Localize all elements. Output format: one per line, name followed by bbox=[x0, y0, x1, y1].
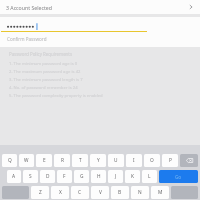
button[interactable]: Q bbox=[2, 154, 17, 167]
staticText: 2. The maximum password age is 42 bbox=[9, 69, 81, 75]
button[interactable]: P bbox=[162, 154, 178, 167]
button[interactable]: Backspace bbox=[180, 154, 198, 167]
staticText: P bbox=[169, 157, 172, 164]
button[interactable]: F bbox=[57, 170, 72, 183]
button[interactable]: B bbox=[111, 186, 129, 199]
staticText: 3 Account Selected bbox=[6, 4, 52, 11]
other: Expand accounts bbox=[188, 4, 194, 10]
button[interactable] bbox=[0, 22, 200, 31]
button[interactable]: M bbox=[151, 186, 169, 199]
button[interactable]: W bbox=[19, 154, 34, 167]
staticText: 1. The minimum password age is 0 bbox=[9, 61, 78, 67]
button[interactable]: R bbox=[54, 154, 70, 167]
button[interactable]: I bbox=[126, 154, 142, 167]
button[interactable]: C bbox=[71, 186, 89, 199]
staticText: Q bbox=[8, 157, 12, 164]
button[interactable]: G bbox=[74, 170, 89, 183]
button[interactable]: V bbox=[91, 186, 109, 199]
staticText: 5. The password complexity property is e… bbox=[9, 93, 103, 99]
staticText: F bbox=[63, 173, 66, 180]
staticText: J bbox=[115, 173, 117, 180]
button[interactable]: L bbox=[142, 170, 157, 183]
staticText: 4. No. of password remember is 24 bbox=[9, 85, 78, 91]
button[interactable]: Go bbox=[159, 170, 198, 183]
staticText: H bbox=[97, 173, 101, 180]
button[interactable]: N bbox=[131, 186, 149, 199]
button[interactable]: S bbox=[23, 170, 38, 183]
staticText: O bbox=[150, 157, 154, 164]
staticText: V bbox=[99, 189, 102, 196]
button[interactable]: J bbox=[108, 170, 123, 183]
staticText: Y bbox=[97, 157, 100, 164]
staticText: S bbox=[29, 173, 32, 180]
staticText: M bbox=[158, 189, 163, 196]
staticText: W bbox=[24, 157, 29, 164]
staticText: Confirm Password bbox=[7, 36, 47, 42]
button[interactable]: A bbox=[7, 170, 21, 183]
button[interactable]: K bbox=[125, 170, 140, 183]
staticText: A bbox=[12, 173, 16, 180]
button[interactable]: Z bbox=[31, 186, 49, 199]
staticText: D bbox=[46, 173, 50, 180]
staticText: Z bbox=[39, 189, 42, 196]
staticText: X bbox=[59, 189, 62, 196]
button[interactable]: X bbox=[51, 186, 69, 199]
button[interactable]: H bbox=[91, 170, 106, 183]
button[interactable]: E bbox=[36, 154, 52, 167]
staticText: E bbox=[43, 157, 46, 164]
staticText: G bbox=[80, 173, 84, 180]
staticText: K bbox=[131, 173, 134, 180]
staticText: C bbox=[78, 189, 82, 196]
button[interactable]: O bbox=[144, 154, 160, 167]
staticText: L bbox=[148, 173, 151, 180]
button[interactable]: D bbox=[40, 170, 55, 183]
staticText: I bbox=[133, 157, 135, 164]
button[interactable]: Y bbox=[90, 154, 106, 167]
staticText: R bbox=[61, 157, 64, 164]
button[interactable]: T bbox=[72, 154, 88, 167]
staticText: B bbox=[118, 189, 122, 196]
staticText: Password Policy Requirements bbox=[9, 51, 73, 57]
button[interactable]: U bbox=[108, 154, 124, 167]
button[interactable]: 3 Account Selected bbox=[0, 0, 200, 14]
staticText: T bbox=[79, 157, 82, 164]
staticText: U bbox=[114, 157, 118, 164]
staticText: N bbox=[138, 189, 142, 196]
staticText: Go bbox=[175, 174, 182, 180]
staticText: 3. The minimum password length is 7 bbox=[9, 77, 83, 83]
